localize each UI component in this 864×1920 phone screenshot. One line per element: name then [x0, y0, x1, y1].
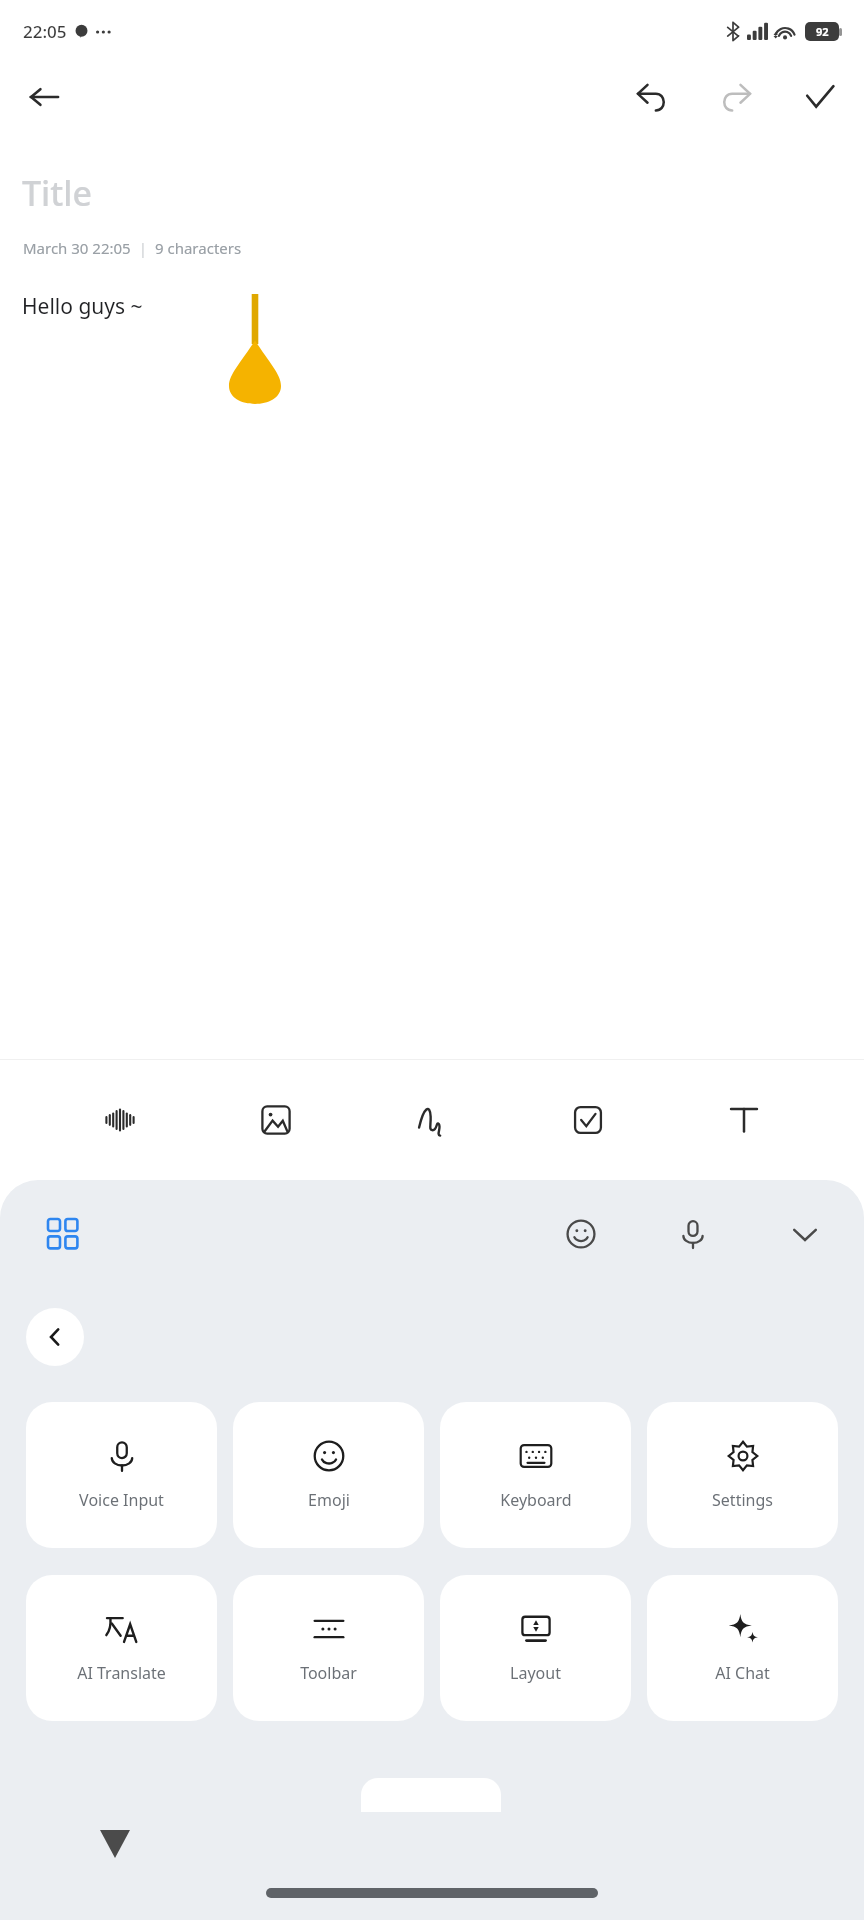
button[interactable]: Voice recording	[84, 1084, 156, 1156]
staticText: Emoji	[308, 1489, 350, 1511]
button[interactable]: Keyboard	[440, 1402, 631, 1548]
button[interactable]: Hide keyboard	[774, 1203, 836, 1265]
button[interactable]: Undo	[624, 69, 680, 125]
button[interactable]: Done	[792, 69, 848, 125]
button[interactable]: AI Chat	[647, 1575, 838, 1721]
button[interactable]: Handwriting	[396, 1084, 468, 1156]
staticText: AI Chat	[715, 1662, 770, 1684]
button[interactable]: Settings	[647, 1402, 838, 1548]
button[interactable]: Emoji	[233, 1402, 424, 1548]
staticText: Voice Input	[79, 1489, 164, 1511]
staticText: Keyboard	[500, 1489, 572, 1511]
staticText: Layout	[510, 1662, 561, 1684]
button[interactable]: Voice Input	[26, 1402, 217, 1548]
button[interactable]: Redo	[708, 69, 764, 125]
staticText: 22:05	[23, 20, 67, 43]
staticText: Settings	[712, 1489, 773, 1511]
button[interactable]: Previous page	[26, 1308, 84, 1366]
button[interactable]: Panel grid	[32, 1203, 94, 1265]
staticText: 92	[816, 24, 829, 39]
button[interactable]: Emoji	[550, 1203, 612, 1265]
button[interactable]: Checklist	[552, 1084, 624, 1156]
staticText: Title	[22, 170, 93, 216]
button[interactable]: Voice input	[662, 1203, 724, 1265]
button[interactable]: Layout	[440, 1575, 631, 1721]
button[interactable]: Insert image	[240, 1084, 312, 1156]
button[interactable]: Back	[16, 69, 72, 125]
staticText: Hello guys ~	[22, 292, 143, 321]
button[interactable]: Toolbar	[233, 1575, 424, 1721]
staticText: March 30 22:05	[23, 238, 131, 258]
staticText: Toolbar	[300, 1662, 357, 1684]
button[interactable]: AI Translate	[26, 1575, 217, 1721]
button[interactable]: Text style	[708, 1084, 780, 1156]
staticText: AI Translate	[77, 1662, 166, 1684]
staticText: |	[131, 238, 155, 258]
staticText: 9 characters	[155, 238, 242, 258]
